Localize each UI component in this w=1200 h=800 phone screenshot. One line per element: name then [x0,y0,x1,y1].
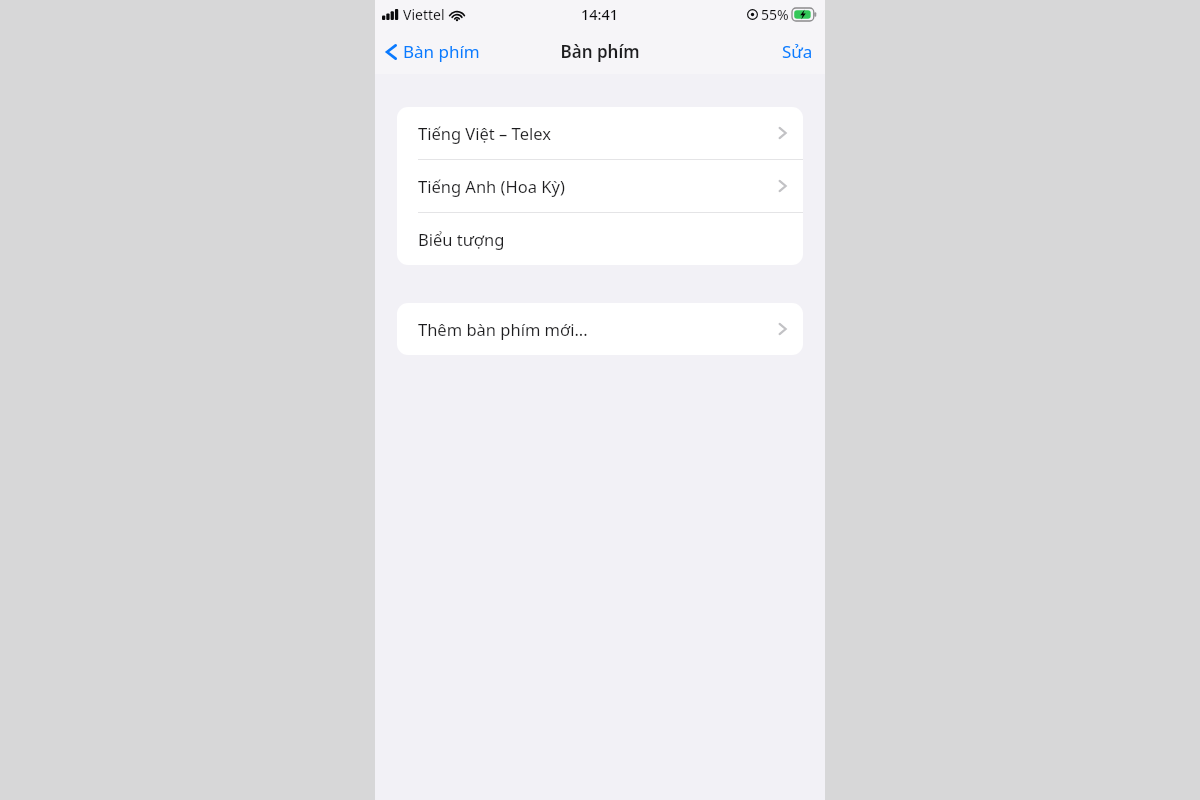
button[interactable]: Thêm bàn phím mới... [397,303,803,355]
staticText: Biểu tượng [418,228,787,250]
other: Open Tiếng Việt – Telex [778,125,787,141]
staticText: Viettel [403,5,445,24]
button[interactable]: Sửa [770,34,825,69]
staticText: Tiếng Việt – Telex [418,122,778,144]
button[interactable]: Biểu tượng [397,213,803,265]
staticText: Thêm bàn phím mới... [418,318,778,340]
other: Open Tiếng Anh (Hoa Kỳ) [778,178,787,194]
staticText: Bàn phím [560,40,640,63]
staticText: 55% [761,5,789,24]
button[interactable]: Tiếng Anh (Hoa Kỳ) [397,160,803,212]
button[interactable]: Bàn phím [375,36,490,67]
staticText: Sửa [782,40,813,63]
staticText: Tiếng Anh (Hoa Kỳ) [418,175,778,197]
button[interactable]: Tiếng Việt – Telex [397,107,803,159]
staticText: Bàn phím [403,40,480,63]
staticText: 14:41 [581,4,619,24]
other: Open Thêm bàn phím mới... [778,321,787,337]
